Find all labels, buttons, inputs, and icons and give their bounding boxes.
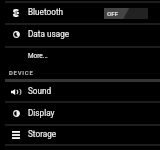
staticText: Sound (28, 86, 52, 96)
staticText: Data usage (28, 29, 70, 39)
staticText: Storage (28, 129, 57, 139)
button[interactable]: More... (0, 48, 160, 64)
button[interactable]: Display (0, 103, 160, 124)
button[interactable]: Bluetooth (0, 3, 160, 23)
staticText: Bluetooth (28, 7, 64, 17)
button[interactable]: Bluetooth switch, off (104, 8, 148, 19)
staticText: More... (28, 52, 48, 60)
staticText: Display (28, 108, 55, 118)
button[interactable]: Sound (0, 82, 160, 101)
button[interactable]: Storage (0, 126, 160, 144)
staticText: DEVICE (9, 69, 34, 76)
button[interactable]: Data usage (0, 25, 160, 46)
staticText: OFF (107, 10, 119, 17)
